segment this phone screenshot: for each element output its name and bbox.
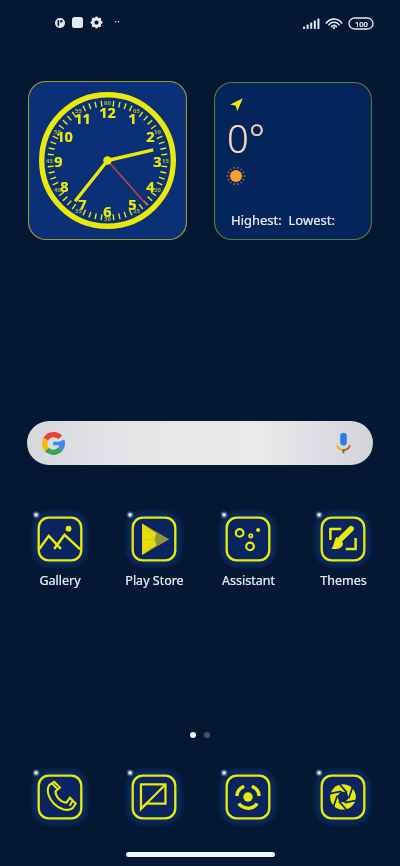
staticText: 60 (104, 99, 111, 107)
staticText: 4 (146, 176, 155, 196)
staticText: 10 (154, 128, 161, 136)
staticText: 7 (78, 194, 87, 214)
button[interactable]: Contacts (221, 770, 275, 824)
staticText: 8 (60, 176, 69, 196)
button[interactable]: Gallery (16, 512, 104, 589)
staticText: 40 (54, 186, 61, 194)
staticText: 45 (46, 157, 53, 165)
staticText: 10 (56, 126, 73, 146)
staticText: 05 (133, 107, 140, 115)
staticText: Play Store (125, 572, 184, 589)
staticText: 3 (153, 151, 162, 171)
button[interactable]: Play Store (110, 512, 198, 589)
staticText: 25 (133, 207, 140, 215)
staticText: 6 (103, 201, 112, 221)
staticText: 15 (162, 157, 169, 165)
button[interactable]: Themes (299, 512, 387, 589)
staticText: 0° (227, 112, 265, 164)
staticText: 5 (128, 194, 137, 214)
button[interactable] (27, 421, 373, 465)
staticText: 55 (75, 107, 82, 115)
staticText: Gallery (39, 572, 81, 589)
button[interactable]: Camera (316, 770, 370, 824)
staticText: 35 (75, 207, 82, 215)
staticText: Assistant (222, 572, 275, 589)
staticText: Highest: Lowest: (231, 211, 335, 229)
staticText: 12 (99, 102, 116, 122)
staticText: 11 (74, 108, 91, 128)
button[interactable]: Phone (33, 770, 87, 824)
staticText: 30 (104, 215, 111, 223)
staticText: 9 (54, 151, 63, 171)
staticText: 100 (355, 19, 368, 29)
staticText: 20 (154, 186, 161, 194)
staticText: 2 (146, 126, 155, 146)
staticText: Themes (320, 572, 367, 589)
staticText: 50 (54, 128, 61, 136)
staticText: 1 (128, 108, 137, 128)
button[interactable]: Messages (127, 770, 181, 824)
button[interactable]: 0° (214, 82, 372, 240)
button[interactable]: Assistant (204, 512, 292, 589)
button[interactable]: 1 (28, 81, 187, 240)
